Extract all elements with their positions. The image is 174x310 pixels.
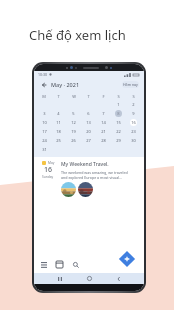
staticText: 4: [57, 111, 60, 116]
button[interactable]: Back: [39, 80, 48, 89]
button[interactable]: 26: [70, 137, 77, 144]
button[interactable]: 2: [130, 101, 137, 108]
button[interactable]: 31: [41, 146, 48, 153]
staticText: S: [117, 94, 120, 99]
staticText: The weekend was amazing, we traveled and…: [61, 170, 128, 180]
staticText: 15: [116, 120, 121, 125]
button[interactable]: 16: [130, 119, 137, 126]
staticText: S: [132, 94, 135, 99]
staticText: 24: [42, 138, 47, 143]
button[interactable]: 25: [55, 137, 62, 144]
button[interactable]: 3: [41, 110, 48, 117]
button[interactable]: 1: [115, 101, 122, 108]
staticText: 11: [56, 120, 61, 125]
button[interactable]: May · 2021: [51, 81, 80, 88]
button[interactable]: 8: [115, 110, 122, 117]
staticText: 10:30: [38, 72, 47, 77]
button[interactable]: Hôm nay: [122, 81, 139, 88]
staticText: My Weekend Travel.: [61, 161, 109, 168]
button[interactable]: 5: [70, 110, 77, 117]
staticText: T: [87, 94, 90, 99]
staticText: 16: [44, 165, 53, 175]
staticText: 19: [71, 129, 76, 134]
button[interactable]: 21: [100, 128, 107, 135]
button[interactable]: [61, 182, 76, 197]
staticText: 30: [131, 138, 136, 143]
staticText: 25: [56, 138, 61, 143]
button[interactable]: 11: [55, 119, 62, 126]
button[interactable]: 7: [100, 110, 107, 117]
staticText: 28: [101, 138, 106, 143]
button[interactable]: 14: [100, 119, 107, 126]
button[interactable]: 17: [41, 128, 48, 135]
staticText: 22: [116, 129, 121, 134]
button[interactable]: 29: [115, 137, 122, 144]
staticText: 2: [132, 102, 135, 107]
staticText: 29: [116, 138, 121, 143]
staticText: 31: [42, 147, 47, 152]
button[interactable]: 28: [100, 137, 107, 144]
staticText: Sunday: [42, 175, 54, 179]
staticText: M: [42, 94, 46, 99]
button[interactable]: 10: [41, 119, 48, 126]
staticText: 13: [86, 120, 91, 125]
button[interactable]: 20: [85, 128, 92, 135]
button[interactable]: 6: [85, 110, 92, 117]
staticText: 12: [71, 120, 76, 125]
button[interactable]: May: [38, 159, 140, 197]
button[interactable]: 15: [115, 119, 122, 126]
staticText: 21: [101, 129, 106, 134]
staticText: Chế độ xem lịch: [29, 26, 126, 44]
staticText: May: [48, 161, 55, 165]
staticText: 23: [131, 129, 136, 134]
button[interactable]: 24: [41, 137, 48, 144]
button[interactable]: Search: [71, 260, 80, 269]
staticText: 20: [86, 129, 91, 134]
button[interactable]: 12: [70, 119, 77, 126]
button[interactable]: 4: [55, 110, 62, 117]
button[interactable]: [78, 182, 93, 197]
staticText: Hôm nay: [123, 82, 138, 87]
button[interactable]: Back: [114, 274, 123, 283]
staticText: 7: [102, 111, 105, 116]
button[interactable]: 19: [70, 128, 77, 135]
staticText: 9: [132, 111, 135, 116]
button[interactable]: 22: [115, 128, 122, 135]
staticText: 16: [131, 120, 136, 125]
button[interactable]: Recents: [55, 274, 64, 283]
button[interactable]: 23: [130, 128, 137, 135]
staticText: 3: [43, 111, 46, 116]
staticText: 5: [72, 111, 75, 116]
button[interactable]: List view: [39, 260, 48, 269]
staticText: 18: [56, 129, 61, 134]
button[interactable]: 18: [55, 128, 62, 135]
button[interactable]: Calendar view: [55, 260, 64, 269]
staticText: F: [102, 94, 105, 99]
button[interactable]: 9: [130, 110, 137, 117]
button[interactable]: 13: [85, 119, 92, 126]
button[interactable]: Add event: [118, 250, 136, 267]
staticText: 1: [117, 102, 120, 107]
staticText: W: [72, 94, 76, 99]
staticText: 17: [42, 129, 47, 134]
button[interactable]: 27: [85, 137, 92, 144]
button[interactable]: 30: [130, 137, 137, 144]
staticText: 27: [86, 138, 91, 143]
staticText: 6: [87, 111, 90, 116]
staticText: T: [57, 94, 60, 99]
staticText: 26: [71, 138, 76, 143]
button[interactable]: Home: [85, 274, 94, 283]
staticText: 10: [42, 120, 47, 125]
staticText: 14: [101, 120, 106, 125]
staticText: 8: [117, 111, 120, 116]
